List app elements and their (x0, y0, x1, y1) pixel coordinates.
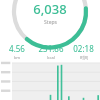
staticText: km (14, 55, 20, 60)
staticText: Steps (44, 19, 57, 26)
staticText: 时间 (80, 55, 88, 60)
button[interactable]: 231.86 (34, 41, 67, 61)
button[interactable]: 4.56 (0, 41, 34, 61)
staticText: 02:18 (73, 43, 94, 54)
button[interactable]: Weekly step chart (0, 61, 100, 100)
staticText: 231.86 (38, 43, 64, 54)
button[interactable]: 02:18 (67, 41, 100, 61)
button[interactable]: Step progress ring (0, 0, 100, 41)
staticText: kcal (47, 55, 55, 60)
staticText: 4.56 (9, 43, 25, 54)
staticText: 6,038 (33, 0, 67, 18)
